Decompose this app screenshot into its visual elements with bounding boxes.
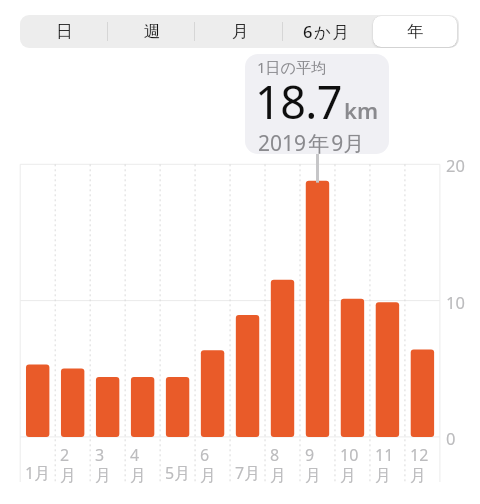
staticText: 月 <box>232 21 249 42</box>
staticText: 月 <box>375 466 391 486</box>
staticText: 月 <box>340 466 356 486</box>
button[interactable]: 週 <box>108 15 196 48</box>
staticText: 年 <box>407 21 424 42</box>
staticText: km <box>344 95 379 125</box>
staticText: 3 <box>95 444 105 466</box>
button[interactable]: 年 <box>371 15 459 48</box>
staticText: 7月 <box>235 462 261 484</box>
staticText: 10 <box>446 291 465 313</box>
staticText: 0 <box>446 427 456 449</box>
staticText: 月 <box>130 466 146 486</box>
staticText: 1日の平均 <box>257 57 326 77</box>
staticText: 月 <box>200 466 216 486</box>
staticText: 18.7 <box>255 71 342 132</box>
staticText: 月 <box>60 466 76 486</box>
staticText: 2019 年 9月 <box>258 129 365 154</box>
staticText: 月 <box>270 466 286 486</box>
staticText: 11 <box>375 444 394 466</box>
button[interactable]: 日 <box>20 15 108 48</box>
staticText: 月 <box>410 466 426 486</box>
staticText: 2 <box>60 444 70 466</box>
staticText: 5月 <box>165 462 191 484</box>
staticText: 1月 <box>25 462 51 484</box>
staticText: 6か月 <box>303 20 351 43</box>
staticText: 12 <box>410 444 429 466</box>
staticText: 10 <box>340 444 359 466</box>
staticText: 8 <box>270 444 280 466</box>
button[interactable]: 月 <box>196 15 284 48</box>
button[interactable]: 1日の平均 <box>245 54 389 154</box>
staticText: 9 <box>305 444 315 466</box>
staticText: 週 <box>144 21 161 42</box>
staticText: 20 <box>446 154 465 176</box>
staticText: 月 <box>305 466 321 486</box>
button[interactable]: 6か月 <box>283 15 371 48</box>
staticText: 月 <box>95 466 111 486</box>
other: Monthly distance bar chart <box>0 0 480 504</box>
staticText: 4 <box>130 444 140 466</box>
staticText: 日 <box>56 21 73 42</box>
staticText: 6 <box>200 444 210 466</box>
